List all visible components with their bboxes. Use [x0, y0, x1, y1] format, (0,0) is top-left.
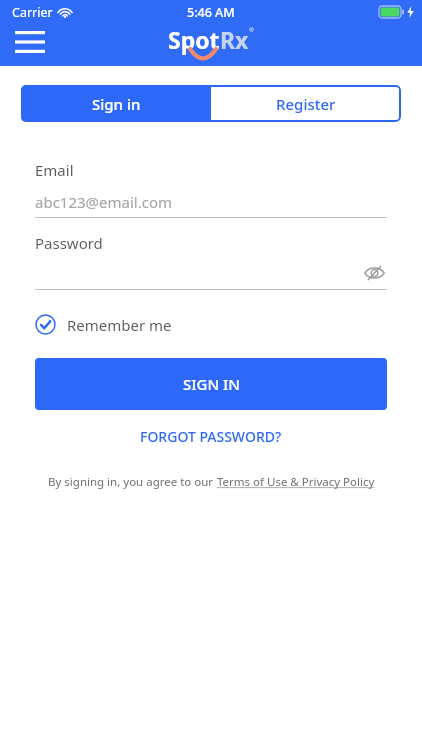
- staticText: Terms of Use & Privacy Policy: [217, 474, 375, 490]
- staticText: SIGN IN: [183, 374, 240, 394]
- button[interactable]: Open navigation menu: [8, 20, 52, 64]
- button[interactable]: Sign in: [21, 85, 211, 122]
- staticText: Spot: [168, 24, 220, 55]
- staticText: abc123@email.com: [35, 192, 173, 212]
- button[interactable]: Remember me: [35, 312, 172, 337]
- staticText: Password: [35, 233, 103, 253]
- staticText: Carrier: [12, 4, 53, 21]
- staticText: 5:46 AM: [187, 4, 235, 21]
- button[interactable]: SIGN IN: [35, 358, 387, 410]
- staticText: Sign in: [92, 94, 141, 114]
- staticText: Rx: [220, 24, 249, 55]
- staticText: By signing in, you agree to our: [48, 474, 217, 490]
- staticText: Email: [35, 160, 74, 180]
- button[interactable]: Terms of Use & Privacy Policy: [217, 474, 375, 490]
- staticText: ®: [249, 26, 254, 34]
- staticText: FORGOT PASSWORD?: [140, 427, 282, 446]
- button[interactable]: Show password: [35, 261, 387, 285]
- staticText: Register: [276, 94, 336, 114]
- button[interactable]: Register: [211, 85, 401, 122]
- button[interactable]: FORGOT PASSWORD?: [130, 422, 292, 451]
- button[interactable]: Show password: [361, 261, 387, 285]
- staticText: Remember me: [67, 315, 172, 335]
- button[interactable]: abc123@email.com: [35, 192, 387, 212]
